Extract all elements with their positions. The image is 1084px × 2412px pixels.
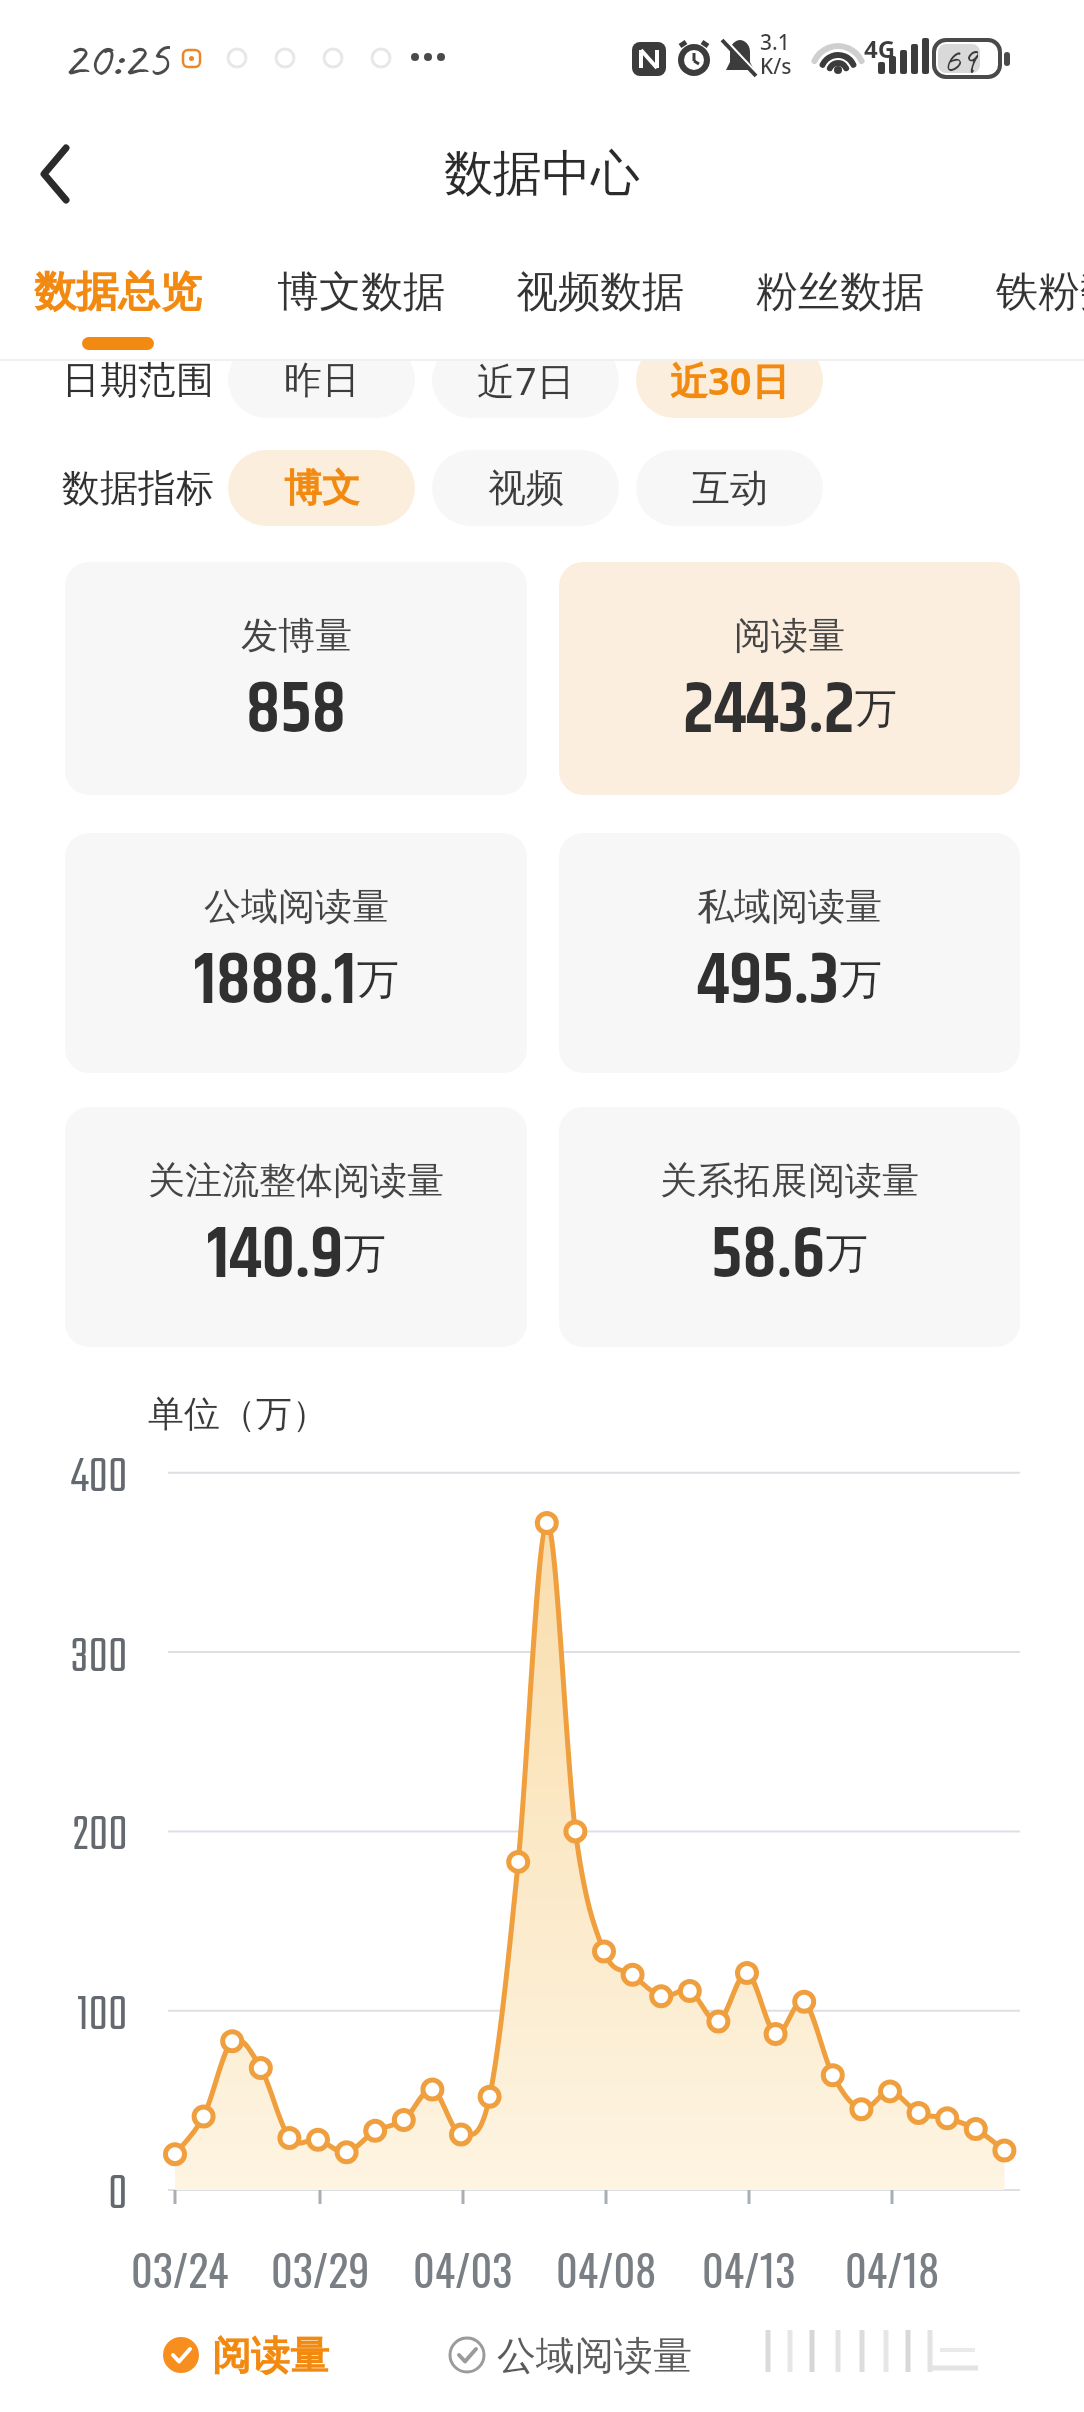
staticText: 数据指标 (62, 464, 214, 512)
staticText: 03/29 (271, 2238, 370, 2298)
button[interactable]: 近7日 (432, 361, 619, 418)
staticText: 04/08 (556, 2238, 657, 2298)
staticText: 日期范围 (62, 361, 214, 404)
staticText: 04/03 (413, 2238, 513, 2298)
staticText: 公域阅读量 (204, 883, 389, 930)
staticText: 200 (73, 1797, 128, 1865)
button[interactable] (160, 2322, 340, 2388)
staticText: 发博量 (241, 612, 352, 659)
staticText: 阅读量 (734, 612, 845, 659)
button[interactable]: 近30日 (636, 361, 823, 418)
staticText: 04/18 (845, 2238, 940, 2298)
staticText: 400 (71, 1439, 128, 1507)
button[interactable]: 数据总览 (8, 252, 228, 332)
staticText: 博文 (284, 464, 360, 512)
staticText: 阅读量 (212, 2331, 329, 2380)
staticText: 万 (357, 954, 399, 1007)
staticText: 数据总览 (34, 266, 202, 319)
button[interactable] (440, 2322, 690, 2388)
staticText: 万 (344, 1228, 386, 1281)
button[interactable]: 发博量 (65, 562, 527, 795)
staticText: 300 (71, 1619, 128, 1687)
staticText: 04/13 (702, 2238, 796, 2298)
staticText: 万 (826, 1228, 868, 1281)
button[interactable]: 博文数据 (251, 252, 471, 332)
staticText: 495.3 (697, 926, 840, 1022)
staticText: 3.1 (760, 28, 790, 56)
staticText: 博文数据 (277, 266, 445, 319)
staticText: 万 (840, 954, 882, 1007)
button[interactable]: 阅读量 (559, 562, 1020, 795)
staticText: 4G (864, 32, 896, 62)
button[interactable]: 公域阅读量 (65, 833, 527, 1073)
staticText: 万 (855, 683, 897, 736)
staticText: 2443.2 (683, 655, 855, 751)
staticText: 公域阅读量 (497, 2331, 692, 2380)
staticText: 近30日 (670, 361, 790, 406)
staticText: 858 (246, 655, 346, 751)
button[interactable]: 昨日 (228, 361, 415, 418)
staticText: K/s (760, 52, 792, 80)
staticText: 20:25 (62, 24, 170, 86)
staticText: 数据中心 (444, 143, 640, 205)
button[interactable]: 互动 (636, 450, 823, 526)
button[interactable]: 视频数据 (490, 252, 710, 332)
staticText: 140.9 (207, 1200, 344, 1296)
staticText: 100 (77, 1977, 128, 2045)
staticText: 关系拓展阅读量 (660, 1157, 919, 1204)
staticText: 单位（万） (148, 1391, 328, 1436)
button[interactable]: 视频 (432, 450, 619, 526)
staticText: 视频 (488, 464, 564, 512)
staticText: 58.6 (711, 1200, 826, 1296)
button[interactable]: 博文 (228, 450, 415, 526)
staticText: 03/24 (131, 2238, 229, 2298)
staticText: 0 (108, 2156, 128, 2224)
staticText: 铁粉数据 (996, 266, 1084, 319)
staticText: 粉丝数据 (756, 266, 924, 319)
staticText: 关注流整体阅读量 (148, 1157, 444, 1204)
button[interactable]: 私域阅读量 (559, 833, 1020, 1073)
staticText: 昨日 (284, 361, 360, 404)
staticText: 互动 (692, 464, 768, 512)
button[interactable]: 铁粉数据 (970, 252, 1084, 332)
staticText: 视频数据 (516, 266, 684, 319)
staticText: 69 (943, 36, 978, 80)
button[interactable] (40, 145, 74, 205)
button[interactable]: 关注流整体阅读量 (65, 1107, 527, 1347)
staticText: 1888.1 (194, 926, 357, 1022)
staticText: 近7日 (477, 361, 575, 406)
button[interactable]: 关系拓展阅读量 (559, 1107, 1020, 1347)
button[interactable]: 粉丝数据 (730, 252, 950, 332)
staticText: 私域阅读量 (697, 883, 882, 930)
